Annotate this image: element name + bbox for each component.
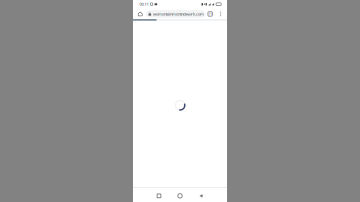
staticText: 11 — [208, 11, 212, 17]
button[interactable]: Back — [190, 189, 211, 202]
staticText: 00:11 — [140, 2, 149, 7]
button[interactable]: Recent apps — [148, 189, 169, 202]
button[interactable]: Customise and control Chrome — [217, 8, 224, 19]
staticText: womentainmentnetwork.com — [153, 11, 204, 17]
button[interactable]: Home — [135, 8, 145, 19]
button[interactable]: Home — [169, 189, 190, 202]
button[interactable]: womentainmentnetwork.com — [146, 10, 205, 18]
button[interactable]: Switch or open tabs — [206, 8, 215, 19]
